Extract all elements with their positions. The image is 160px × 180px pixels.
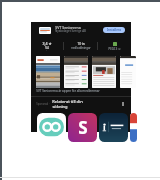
staticText: nedladdningar xyxy=(71,46,91,50)
button[interactable]: App icon xyxy=(39,27,51,34)
button[interactable]: Wellness app xyxy=(37,113,66,142)
staticText: 10 tn xyxy=(77,42,85,46)
button[interactable]: Screenshot 2 xyxy=(64,56,88,88)
button[interactable]: Screenshot 4 xyxy=(120,56,136,88)
staticText: PEGI 3 ⓘ xyxy=(108,47,121,51)
button[interactable]: Installera xyxy=(103,27,125,33)
staticText: Sponsrad · xyxy=(36,102,50,106)
staticText: sökning xyxy=(52,104,68,109)
button[interactable]: Screenshot 1 xyxy=(36,56,60,88)
button[interactable]: Football club app xyxy=(99,113,128,142)
staticText: S xyxy=(78,116,88,139)
staticText: recensioner ⓘ xyxy=(37,50,57,51)
staticText: SVT Seniorerna är appen för alla medlemm… xyxy=(36,89,100,93)
staticText: Installera xyxy=(107,28,121,32)
staticText: SVT Seniorerna xyxy=(55,25,81,30)
button[interactable]: App 4 xyxy=(130,113,137,142)
button[interactable]: Screenshot 3 xyxy=(92,56,116,88)
button[interactable]: SkyShowtime xyxy=(68,113,97,142)
staticText: Nyabolaget Sverige AB xyxy=(55,29,86,33)
staticText: 54 xyxy=(45,46,49,50)
staticText: Relaterat till din xyxy=(52,99,83,104)
staticText: 3,4 ★ xyxy=(42,41,52,46)
